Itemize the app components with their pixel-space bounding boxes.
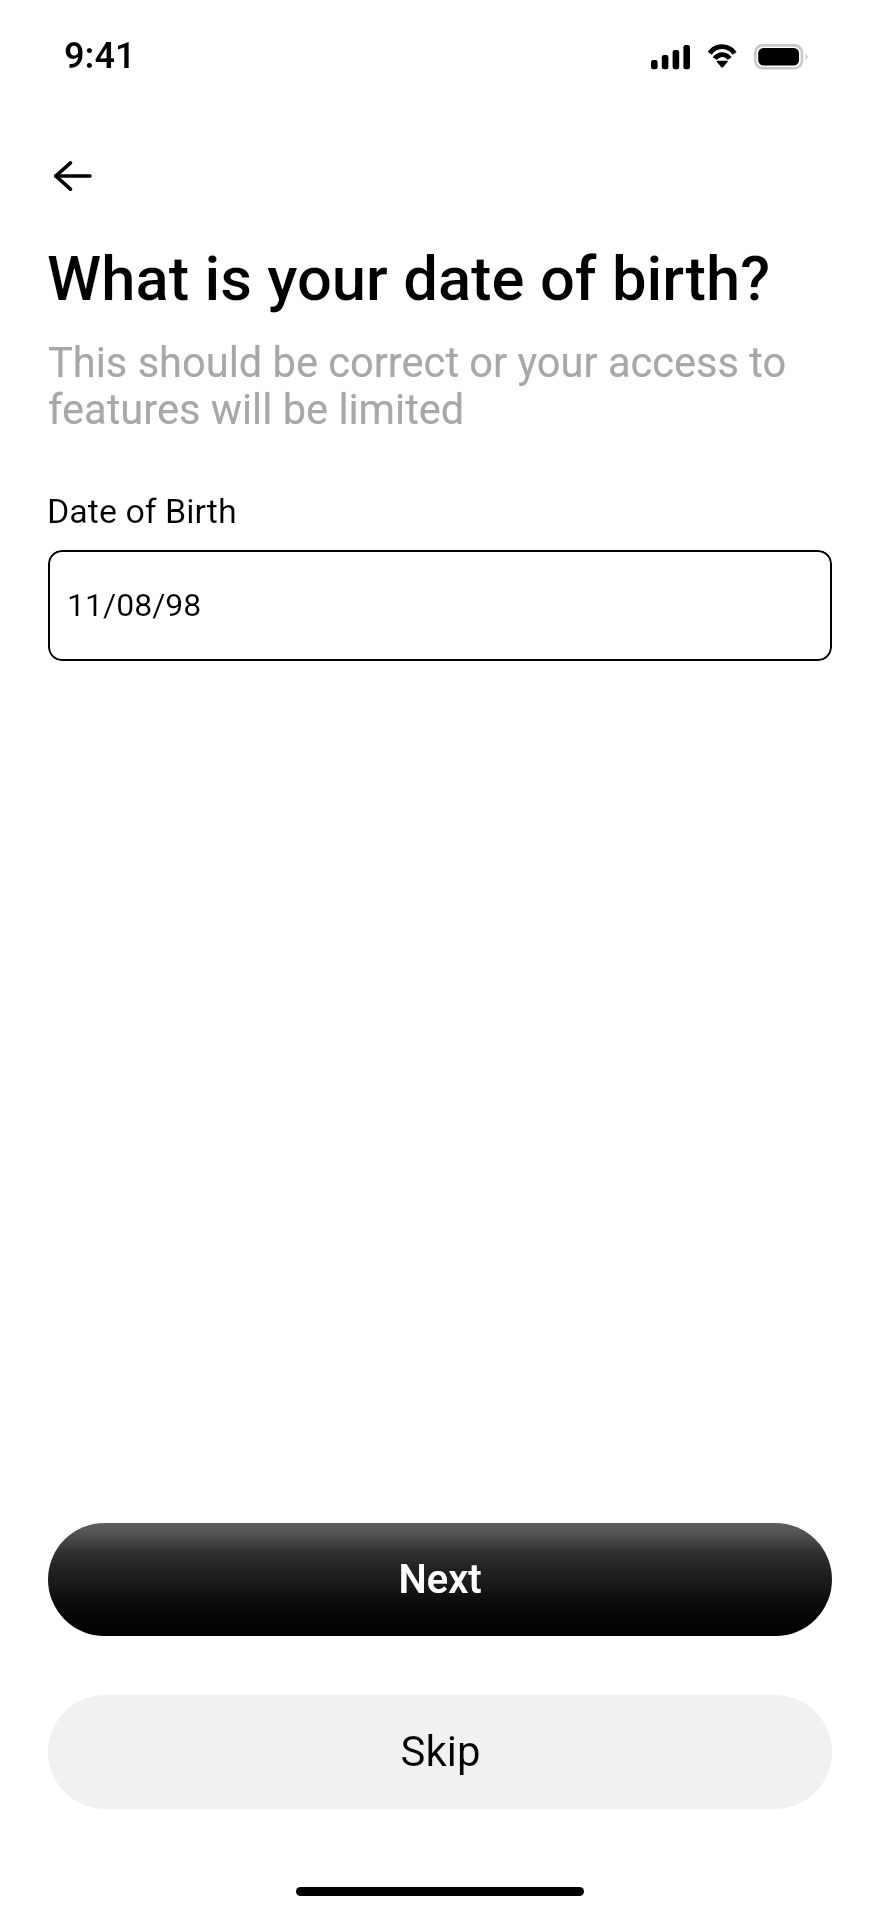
staticText: 11/08/98 [67,586,202,624]
staticText: Date of Birth [47,491,237,531]
button[interactable]: Back [30,152,114,200]
staticText: Next [398,1557,482,1603]
button[interactable]: Skip [48,1695,832,1809]
staticText: Skip [400,1728,481,1776]
staticText: This should be correct or your access to… [48,340,808,434]
staticText: What is your date of birth? [47,243,771,315]
button[interactable]: Date of Birth, 11/08/98 [48,550,832,661]
staticText: 9:41 [64,35,136,77]
button[interactable]: Next [48,1523,832,1636]
